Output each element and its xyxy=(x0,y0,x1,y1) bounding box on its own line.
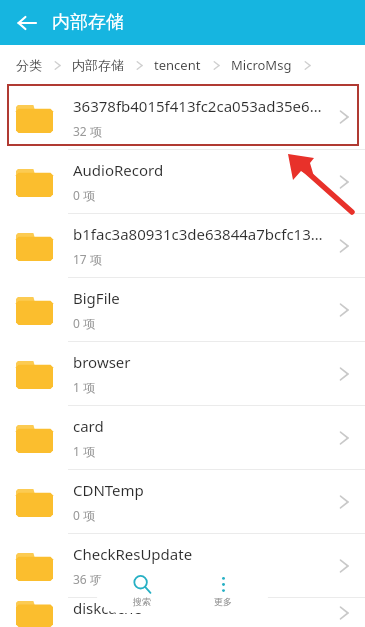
staticText: MicroMsg xyxy=(231,56,292,74)
staticText: browser xyxy=(73,352,131,372)
button[interactable]: 36378fb4015f413fc2ca053ad35e6… xyxy=(0,85,365,149)
button[interactable]: BigFile xyxy=(0,278,365,341)
staticText: 36 项 xyxy=(73,571,102,587)
staticText: 0 项 xyxy=(73,315,95,331)
staticText: card xyxy=(73,416,104,436)
staticText: 内部存储 xyxy=(72,57,124,73)
staticText: CheckResUpdate xyxy=(73,544,193,564)
button[interactable]: CheckResUpdate xyxy=(0,534,365,597)
staticText: CDNTemp xyxy=(73,480,144,500)
staticText: AudioRecord xyxy=(73,160,164,180)
button[interactable]: 内部存储 xyxy=(70,55,126,75)
staticText: 分类 xyxy=(16,57,42,73)
staticText: 17 项 xyxy=(73,251,102,267)
staticText: BigFile xyxy=(73,288,120,308)
staticText: 搜索 xyxy=(133,596,151,607)
staticText: 1 项 xyxy=(73,379,95,395)
staticText: 更多 xyxy=(214,596,232,607)
button[interactable]: browser xyxy=(0,342,365,405)
staticText: 0 项 xyxy=(73,187,95,203)
staticText: 1 项 xyxy=(73,443,95,459)
button[interactable]: tencent xyxy=(152,54,203,76)
button[interactable]: Back xyxy=(8,4,46,42)
staticText: 32 项 xyxy=(73,123,102,139)
button[interactable]: 搜索 xyxy=(106,569,178,613)
button[interactable]: 分类 xyxy=(14,55,44,75)
staticText: 内部存储 xyxy=(52,11,124,34)
staticText: b1fac3a80931c3de63844a7bcfc13… xyxy=(73,224,323,244)
staticText: diskcache xyxy=(73,598,142,618)
button[interactable]: card xyxy=(0,406,365,469)
staticText: tencent xyxy=(154,56,201,74)
button[interactable]: MicroMsg xyxy=(229,54,294,76)
staticText: 36378fb4015f413fc2ca053ad35e6… xyxy=(73,96,322,116)
button[interactable]: AudioRecord xyxy=(0,150,365,213)
staticText: 0 项 xyxy=(73,507,95,523)
button[interactable]: 更多 xyxy=(187,569,259,613)
button[interactable]: diskcache xyxy=(0,598,365,627)
button[interactable]: b1fac3a80931c3de63844a7bcfc13… xyxy=(0,214,365,277)
button[interactable]: CDNTemp xyxy=(0,470,365,533)
